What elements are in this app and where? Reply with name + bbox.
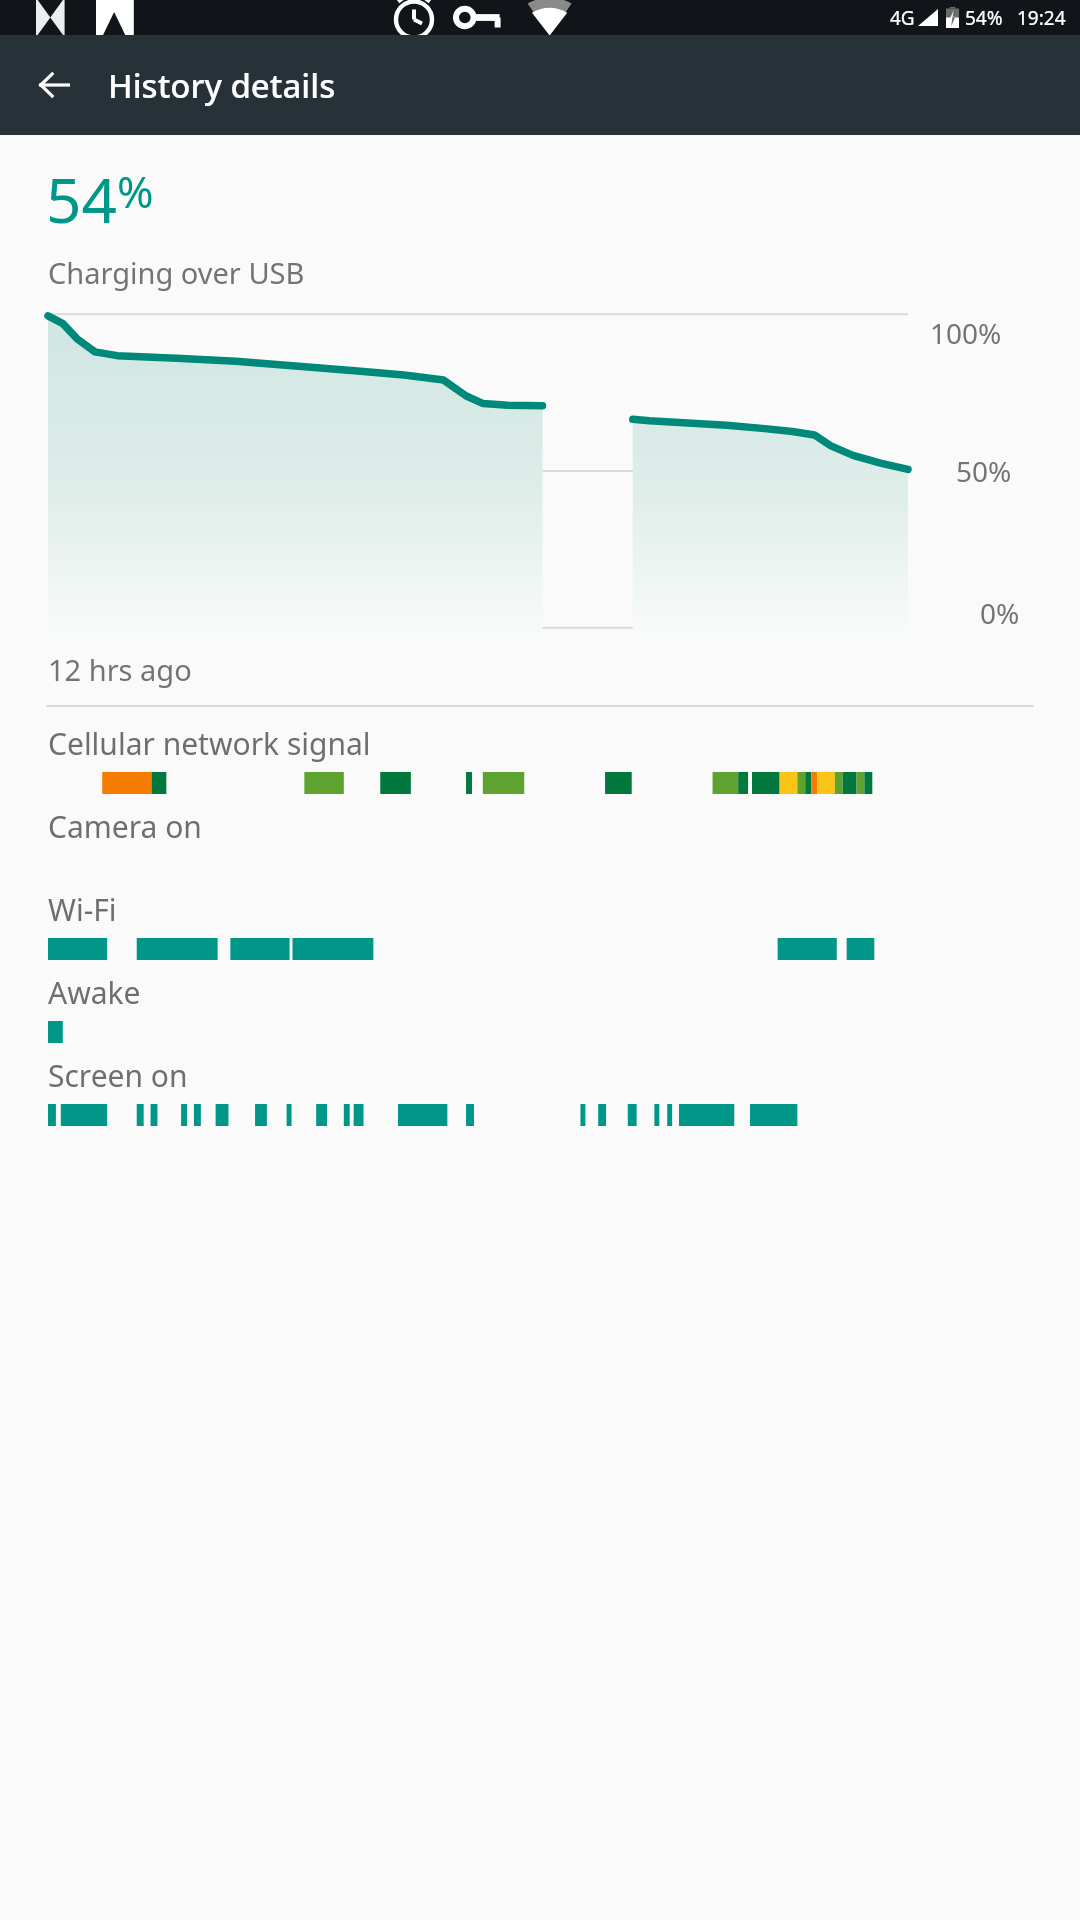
staticText: Screen on	[48, 1055, 188, 1096]
staticText: 54%	[965, 5, 1003, 31]
staticText: 4G	[890, 5, 915, 31]
staticText: 19:24	[1017, 5, 1066, 31]
staticText: Charging over USB	[48, 253, 305, 292]
staticText: 54	[46, 157, 117, 241]
staticText: Wi-Fi	[48, 889, 117, 930]
staticText: 12 hrs ago	[48, 650, 192, 689]
button[interactable]: Back	[30, 61, 78, 109]
button[interactable]: Screen on	[0, 1043, 1080, 1126]
staticText: Awake	[48, 972, 141, 1013]
button[interactable]: Camera on	[0, 794, 1080, 877]
staticText: Cellular network signal	[48, 723, 371, 764]
staticText: 100%	[930, 314, 1002, 352]
staticText: %	[117, 161, 154, 221]
staticText: Camera on	[48, 806, 202, 847]
button[interactable]: Awake	[0, 960, 1080, 1043]
staticText: History details	[108, 63, 336, 108]
staticText: 50%	[956, 452, 1012, 490]
button[interactable]: Cellular network signal	[0, 711, 1080, 794]
staticText: 0%	[980, 594, 1020, 632]
button[interactable]: Wi-Fi	[0, 877, 1080, 960]
